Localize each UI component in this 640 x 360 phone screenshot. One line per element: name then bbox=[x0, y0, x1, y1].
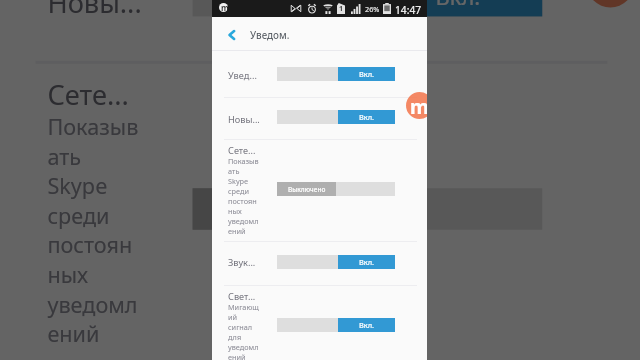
staticText: Сете... bbox=[228, 144, 256, 157]
staticText: Мигающ ий сигнал для уведомл ений bbox=[228, 302, 259, 360]
staticText: m bbox=[410, 94, 427, 120]
button[interactable]: Back bbox=[221, 25, 241, 45]
staticText: Показыв ать Skype среди постоян ных увед… bbox=[228, 156, 259, 236]
staticText: Вкл. bbox=[436, 0, 483, 10]
button[interactable]: Вкл. bbox=[277, 67, 395, 81]
button[interactable]: Вкл. bbox=[277, 255, 395, 269]
staticText: Увед... bbox=[228, 69, 257, 82]
staticText: Выключено bbox=[288, 185, 326, 194]
staticText: Уведом. bbox=[250, 29, 290, 42]
staticText: Показыв ать Skype среди постоян ных увед… bbox=[47, 111, 139, 348]
staticText: Вкл. bbox=[359, 257, 375, 267]
button[interactable]: Вкл. bbox=[193, 0, 542, 16]
staticText: Сете... bbox=[47, 76, 130, 114]
staticText: Вкл. bbox=[359, 320, 375, 330]
staticText: m bbox=[221, 2, 229, 11]
staticText: 26% bbox=[365, 4, 380, 14]
staticText: Выключено bbox=[225, 197, 338, 224]
staticText: Новы... bbox=[228, 113, 260, 126]
staticText: Вкл. bbox=[359, 112, 375, 122]
staticText: Свет... bbox=[228, 290, 256, 303]
button[interactable]: Вкл. bbox=[277, 318, 395, 332]
button[interactable]: Вкл. bbox=[277, 110, 395, 124]
staticText: Вкл. bbox=[359, 69, 375, 79]
staticText: 1 bbox=[339, 4, 344, 14]
staticText: Звук... bbox=[228, 256, 256, 269]
button[interactable]: Выключено bbox=[277, 182, 395, 196]
button[interactable]: Выключено bbox=[193, 188, 542, 230]
staticText: 14:47 bbox=[395, 3, 422, 17]
staticText: Новы... bbox=[47, 0, 142, 22]
staticText: m bbox=[593, 0, 628, 10]
